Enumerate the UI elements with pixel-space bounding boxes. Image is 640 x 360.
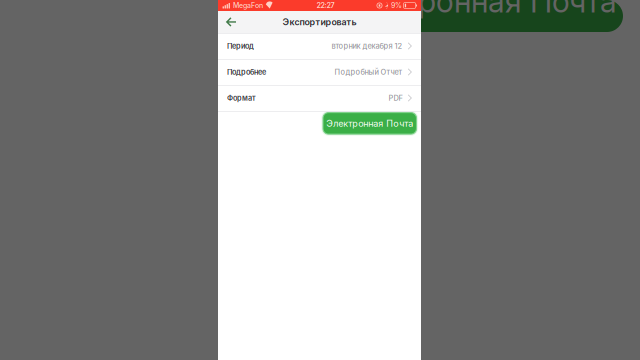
staticText: MegaFon bbox=[233, 1, 263, 10]
staticText: вторник декабря 12 bbox=[331, 41, 402, 50]
staticText: Подробный Отчет bbox=[334, 67, 402, 76]
staticText: Формат bbox=[227, 94, 256, 102]
button[interactable]: Назад bbox=[218, 11, 244, 33]
staticText: Электронная Почта bbox=[326, 118, 413, 129]
staticText: Подробнее bbox=[227, 68, 266, 76]
staticText: 22:27 bbox=[316, 1, 334, 10]
button[interactable]: Период bbox=[218, 33, 421, 59]
staticText: PDF bbox=[388, 93, 402, 102]
staticText: 9% bbox=[391, 1, 402, 10]
button[interactable]: Подробнее bbox=[218, 59, 421, 85]
staticText: Электронная Почта bbox=[332, 0, 617, 20]
button[interactable]: Электронная Почта bbox=[321, 111, 418, 136]
button[interactable]: Формат bbox=[218, 85, 421, 111]
staticText: Период bbox=[227, 42, 254, 50]
staticText: Экспортировать bbox=[282, 17, 356, 27]
